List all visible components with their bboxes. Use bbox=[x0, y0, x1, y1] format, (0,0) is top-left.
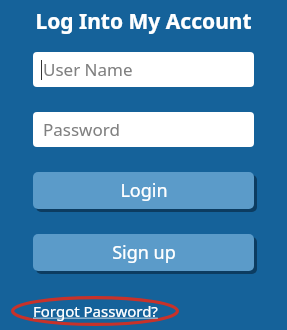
staticText: Password bbox=[43, 118, 120, 141]
button[interactable]: Login bbox=[33, 172, 254, 209]
staticText: User Name bbox=[43, 58, 133, 81]
button[interactable]: Forgot Password? bbox=[27, 299, 164, 323]
button[interactable]: Sign up bbox=[33, 234, 254, 271]
staticText: Sign up bbox=[112, 240, 176, 265]
button[interactable]: User Name bbox=[33, 52, 254, 87]
button[interactable]: Password bbox=[33, 112, 254, 147]
staticText: Login bbox=[120, 178, 168, 203]
staticText: Forgot Password? bbox=[33, 301, 158, 321]
staticText: Log Into My Account bbox=[35, 7, 252, 36]
